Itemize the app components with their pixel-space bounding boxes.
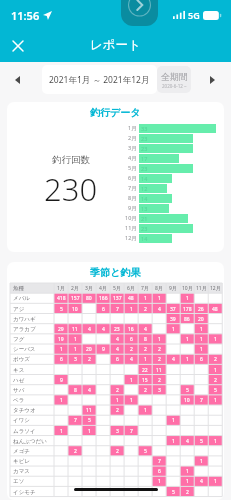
- staticText: ムラソイ: [13, 428, 36, 435]
- button[interactable]: 全期間: [157, 66, 191, 93]
- staticText: 7: [200, 397, 203, 404]
- staticText: 10月: [125, 214, 137, 222]
- staticText: 1: [158, 478, 161, 485]
- staticText: 6: [102, 306, 105, 313]
- staticText: イシモチ: [13, 489, 36, 496]
- staticText: 6: [130, 336, 133, 343]
- staticText: 7: [116, 306, 119, 313]
- staticText: 5: [214, 387, 217, 394]
- staticText: 7: [158, 458, 161, 465]
- button[interactable]: Close: [4, 32, 31, 59]
- button[interactable]: Previous period: [7, 70, 27, 90]
- staticText: 1: [186, 478, 189, 485]
- staticText: 魚種: [13, 285, 24, 292]
- staticText: カマス: [13, 468, 30, 475]
- staticText: 14: [141, 175, 148, 182]
- staticText: 1: [144, 356, 147, 363]
- staticText: 9月: [128, 204, 137, 212]
- staticText: ボウズ: [13, 356, 30, 363]
- staticText: 2: [144, 346, 147, 353]
- staticText: 4: [130, 356, 133, 363]
- staticText: 11: [72, 326, 78, 333]
- staticText: 11: [156, 367, 162, 374]
- staticText: 1: [74, 346, 77, 353]
- staticText: 4: [116, 346, 119, 353]
- staticText: 22: [142, 367, 148, 374]
- staticText: 230: [44, 168, 98, 210]
- staticText: 12: [141, 185, 148, 192]
- staticText: 6: [200, 356, 203, 363]
- staticText: 5: [200, 438, 203, 445]
- staticText: 2: [158, 346, 161, 353]
- staticText: 2: [116, 387, 119, 394]
- staticText: レポート: [90, 37, 141, 53]
- staticText: 3: [116, 428, 119, 435]
- staticText: 2: [144, 306, 147, 313]
- staticText: 2月: [128, 134, 137, 142]
- staticText: 2: [88, 356, 91, 363]
- staticText: 2: [158, 377, 161, 384]
- staticText: 1: [186, 356, 189, 363]
- staticText: 19: [58, 336, 64, 343]
- staticText: 6月: [128, 174, 137, 182]
- staticText: 33: [141, 125, 148, 132]
- staticText: 2: [158, 356, 161, 363]
- staticText: アラカブ: [13, 326, 36, 333]
- staticText: 2: [116, 448, 119, 455]
- staticText: 1月: [128, 124, 137, 132]
- staticText: 23: [141, 145, 148, 152]
- staticText: 1: [158, 336, 161, 343]
- staticText: 48: [212, 306, 218, 313]
- staticText: 1: [144, 407, 147, 414]
- staticText: メバル: [13, 295, 30, 302]
- staticText: 23: [141, 165, 148, 172]
- staticText: 5: [172, 489, 175, 496]
- staticText: 1: [214, 367, 217, 374]
- staticText: 39: [170, 316, 176, 323]
- staticText: 1: [214, 336, 217, 343]
- staticText: 3: [158, 387, 161, 394]
- staticText: 23: [141, 225, 148, 232]
- staticText: 釣行回数: [52, 154, 90, 166]
- staticText: 11月: [125, 224, 137, 232]
- staticText: 80: [86, 295, 92, 302]
- staticText: 2月: [71, 285, 79, 292]
- staticText: 1: [186, 468, 189, 475]
- staticText: 1: [158, 295, 161, 302]
- staticText: 8: [144, 336, 147, 343]
- staticText: フグ: [13, 336, 25, 343]
- staticText: 7月: [141, 285, 149, 292]
- staticText: 4: [88, 387, 91, 394]
- staticText: 48: [128, 295, 134, 302]
- staticText: アジ: [13, 306, 25, 313]
- staticText: 1: [88, 428, 91, 435]
- staticText: カワハギ: [13, 316, 36, 323]
- staticText: 7: [130, 428, 133, 435]
- staticText: 2: [214, 356, 217, 363]
- staticText: 2: [214, 377, 217, 384]
- staticText: 2: [74, 448, 77, 455]
- staticText: 17: [141, 155, 148, 162]
- staticText: 1: [74, 336, 77, 343]
- staticText: 釣行データ: [90, 106, 141, 119]
- staticText: 9: [60, 377, 63, 384]
- staticText: 4: [172, 356, 175, 363]
- staticText: ねんぶつだい: [13, 438, 47, 445]
- staticText: 8月: [128, 194, 137, 202]
- staticText: 8月: [155, 285, 163, 292]
- staticText: メゴチ: [13, 448, 30, 455]
- staticText: 2021年1月 ～ 2021年12月: [49, 74, 150, 86]
- button[interactable]: Next period: [202, 70, 222, 90]
- staticText: 6: [60, 356, 63, 363]
- staticText: 1: [60, 428, 63, 435]
- staticText: 11: [86, 407, 92, 414]
- staticText: 21: [141, 215, 148, 222]
- staticText: 1: [172, 326, 175, 333]
- button[interactable]: 2021年1月 ～ 2021年12月: [42, 65, 157, 94]
- staticText: 16: [128, 326, 134, 333]
- staticText: 1: [214, 478, 217, 485]
- staticText: 20: [198, 316, 204, 323]
- staticText: 29: [58, 326, 64, 333]
- staticText: 5: [88, 417, 91, 424]
- staticText: 166: [99, 295, 108, 302]
